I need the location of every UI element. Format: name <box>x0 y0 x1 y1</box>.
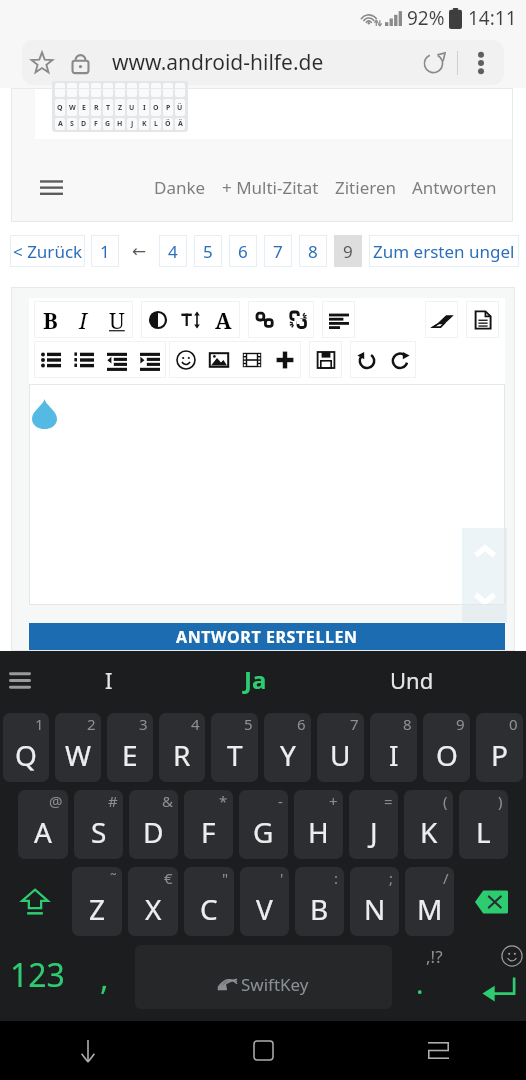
button[interactable]: Alignment <box>322 301 355 338</box>
button[interactable]: Post menu <box>40 170 70 204</box>
button[interactable]: More options <box>458 41 504 85</box>
button[interactable]: ( <box>404 790 453 859</box>
staticText: L <box>476 813 491 851</box>
button[interactable]: / <box>405 867 454 936</box>
button[interactable]: * <box>184 790 233 859</box>
button[interactable]: Indent <box>133 341 166 378</box>
button[interactable]: Remove formatting <box>425 301 458 338</box>
button[interactable]: Save draft <box>309 341 342 378</box>
button[interactable]: + <box>294 790 343 859</box>
button[interactable]: I <box>67 301 100 338</box>
button[interactable]: Enter <box>460 944 526 1010</box>
button[interactable]: 5 <box>194 235 222 267</box>
button[interactable]: Remove link <box>281 301 314 338</box>
button[interactable]: 6 <box>229 235 257 267</box>
button[interactable]: U <box>100 301 133 338</box>
button[interactable]: € <box>128 867 178 936</box>
button[interactable]: 3 <box>107 713 153 782</box>
button[interactable]: " <box>184 867 234 936</box>
button[interactable]: More options <box>268 341 301 378</box>
staticText: T <box>227 736 243 774</box>
button[interactable]: 4 <box>159 713 205 782</box>
button[interactable]: Danke <box>146 167 214 208</box>
button[interactable]: 8 <box>299 235 327 267</box>
button[interactable]: Reload page <box>411 41 457 85</box>
staticText: Q <box>57 103 63 113</box>
button[interactable]: I <box>40 651 178 708</box>
button[interactable]: Scroll up <box>462 528 507 575</box>
button[interactable]: Scroll down <box>462 575 507 622</box>
button[interactable]: Ja <box>178 651 333 708</box>
button[interactable]: ; <box>350 867 399 936</box>
button[interactable]: < Zurück <box>10 235 85 267</box>
button[interactable]: Insert emoji <box>169 341 202 378</box>
staticText: " <box>222 868 229 888</box>
button[interactable]: Home <box>176 1021 351 1080</box>
button[interactable]: Numbered list <box>67 341 100 378</box>
button[interactable]: 123 <box>0 944 74 1010</box>
button[interactable]: , <box>74 944 135 1010</box>
button[interactable]: ANTWORT ERSTELLEN <box>29 623 505 651</box>
button[interactable]: 2 <box>55 713 101 782</box>
button[interactable]: Shift <box>0 867 69 936</box>
button[interactable]: ,!? <box>392 944 460 1010</box>
button[interactable]: 9 <box>423 713 470 782</box>
button[interactable]: Site information <box>61 41 99 85</box>
button[interactable]: 7 <box>264 235 292 267</box>
button[interactable]: Bulleted list <box>34 341 67 378</box>
button[interactable]: ' <box>240 867 289 936</box>
button[interactable]: B <box>34 301 67 338</box>
button[interactable]: Source code <box>466 301 499 338</box>
button[interactable]: 1 <box>91 235 119 267</box>
button[interactable]: Keyboard menu <box>0 651 40 708</box>
staticText: 9 <box>456 714 465 734</box>
staticText: V <box>256 890 273 928</box>
button[interactable]: A <box>207 301 240 338</box>
button[interactable]: 9 <box>334 235 362 267</box>
button[interactable]: Insert video <box>235 341 268 378</box>
staticText: 1 <box>35 714 44 734</box>
button[interactable]: - <box>239 790 288 859</box>
staticText: , <box>100 956 109 1000</box>
button[interactable]: 4 <box>159 235 187 267</box>
button[interactable]: Und <box>333 651 490 708</box>
staticText: 8 <box>403 714 412 734</box>
button[interactable]: @ <box>18 790 68 859</box>
button[interactable]: 6 <box>264 713 311 782</box>
staticText: 92% <box>407 5 445 31</box>
staticText: O <box>153 103 159 113</box>
button[interactable]: Zitieren <box>327 167 404 208</box>
button[interactable]: Insert link <box>248 301 281 338</box>
button[interactable]: : <box>295 867 344 936</box>
button[interactable]: Text colour <box>141 301 174 338</box>
button[interactable]: 8 <box>370 713 417 782</box>
button[interactable]: Undo <box>350 341 383 378</box>
button[interactable]: 5 <box>211 713 258 782</box>
staticText: S <box>91 813 107 851</box>
button[interactable]: Zum ersten ungel <box>369 235 519 267</box>
staticText: Ja <box>244 663 267 696</box>
button[interactable]: Antworten <box>404 167 505 208</box>
button[interactable]: 7 <box>317 713 364 782</box>
button[interactable]: Font size <box>174 301 207 338</box>
button[interactable]: Bookmark <box>22 41 61 85</box>
staticText: W <box>69 103 76 113</box>
button[interactable]: & <box>129 790 178 859</box>
button[interactable]: Redo <box>383 341 416 378</box>
staticText: Zum ersten ungel <box>373 240 515 263</box>
button[interactable]: Outdent <box>100 341 133 378</box>
button[interactable]: 0 <box>476 713 523 782</box>
staticText: A <box>34 813 52 851</box>
button[interactable]: Space <box>135 945 392 1009</box>
button[interactable]: Insert image <box>202 341 235 378</box>
button[interactable]: ) <box>459 790 508 859</box>
button[interactable]: 1 <box>3 713 49 782</box>
button[interactable]: = <box>349 790 398 859</box>
button[interactable]: # <box>74 790 123 859</box>
button[interactable]: ˜ <box>72 867 122 936</box>
button[interactable]: Recent apps <box>351 1021 526 1080</box>
staticText: 9 <box>343 240 353 263</box>
button[interactable]: + Multi-Zitat <box>214 167 327 208</box>
button[interactable]: Backspace <box>457 867 526 936</box>
button[interactable]: Hide keyboard <box>0 1021 176 1080</box>
